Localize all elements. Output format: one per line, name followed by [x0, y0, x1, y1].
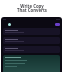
button[interactable]: Profile: [8, 23, 11, 26]
button[interactable]: [3, 37, 60, 44]
button[interactable]: New: [55, 23, 60, 26]
button[interactable]: [3, 46, 60, 53]
button[interactable]: [3, 28, 60, 35]
button[interactable]: [3, 55, 60, 72]
staticText: Write Copy That Converts: [0, 3, 64, 14]
